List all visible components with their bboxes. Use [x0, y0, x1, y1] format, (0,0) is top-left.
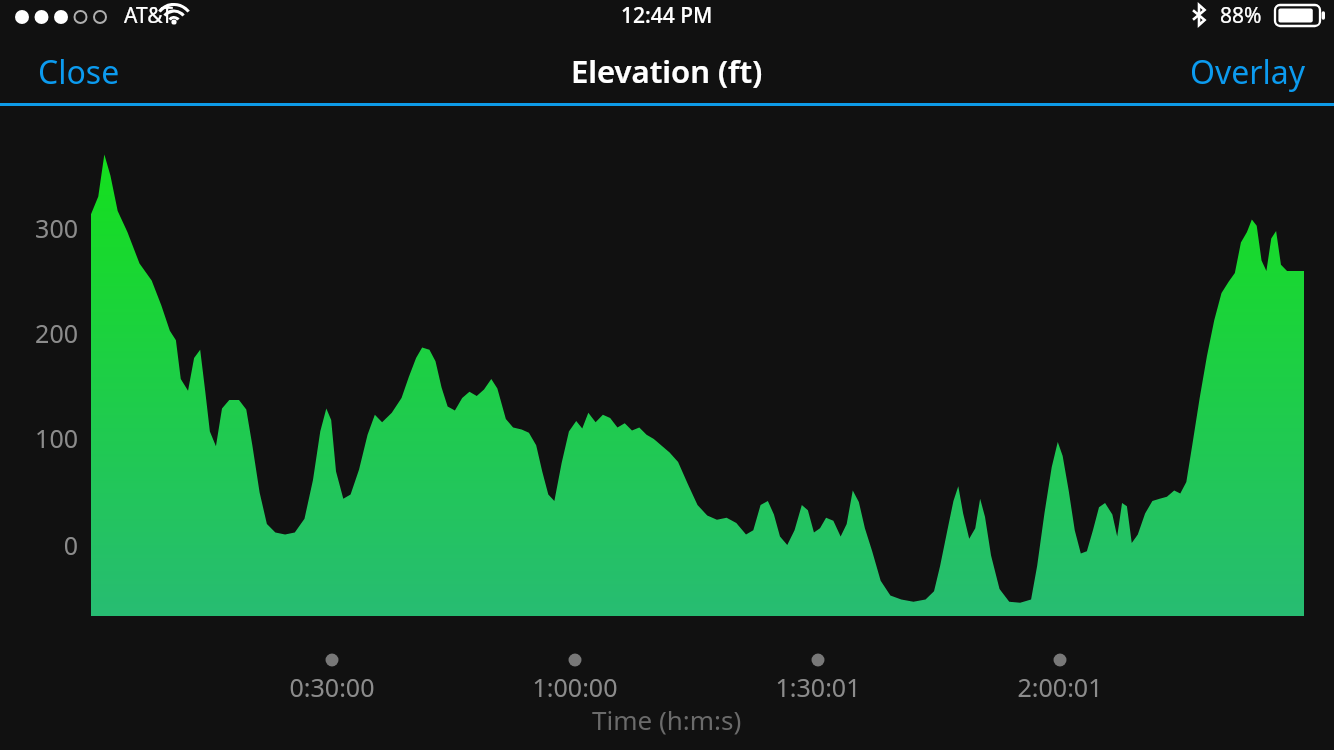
staticText: Overlay — [1190, 50, 1306, 94]
staticText: Time (h:m:s) — [592, 702, 742, 737]
staticText: AT&T — [124, 1, 173, 30]
staticText: 300 — [0, 211, 78, 245]
staticText: 88% — [1220, 1, 1262, 30]
staticText: 1:30:01 — [748, 670, 888, 704]
staticText: 1:00:00 — [505, 670, 645, 704]
staticText: Close — [38, 50, 120, 94]
staticText: 2:00:01 — [990, 670, 1130, 704]
staticText: 0 — [0, 528, 78, 562]
staticText: 100 — [0, 421, 78, 455]
button[interactable]: Overlay — [1180, 46, 1316, 98]
staticText: Elevation (ft) — [571, 50, 763, 92]
staticText: 0:30:00 — [262, 670, 402, 704]
staticText: 12:44 PM — [621, 1, 713, 30]
button[interactable]: Close — [28, 46, 130, 98]
staticText: 200 — [0, 316, 78, 350]
